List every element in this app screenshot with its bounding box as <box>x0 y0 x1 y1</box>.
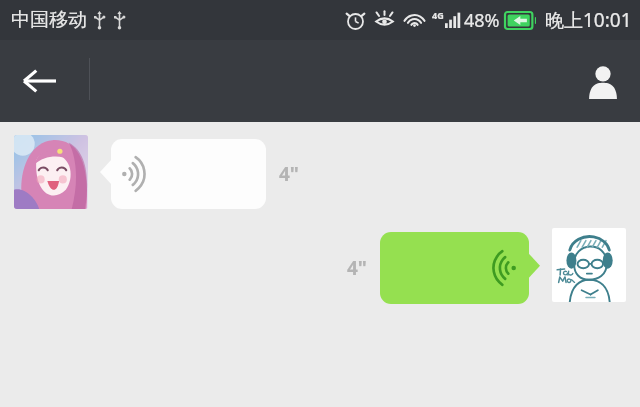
button[interactable]: Contact avatar <box>14 135 88 209</box>
button[interactable]: My avatar <box>552 228 626 302</box>
staticText: 中国移动 <box>11 8 87 32</box>
staticText: 4" <box>347 255 367 281</box>
staticText: 48% <box>464 8 500 33</box>
staticText: 4" <box>279 161 299 187</box>
button[interactable]: Back <box>0 40 78 122</box>
button[interactable]: Play voice message, 4 seconds <box>380 232 540 304</box>
staticText: 4G <box>432 9 444 21</box>
button[interactable]: Play voice message, 4 seconds <box>100 139 266 209</box>
button[interactable]: Contact info <box>566 40 640 122</box>
staticText: 晚上10:01 <box>545 7 632 33</box>
